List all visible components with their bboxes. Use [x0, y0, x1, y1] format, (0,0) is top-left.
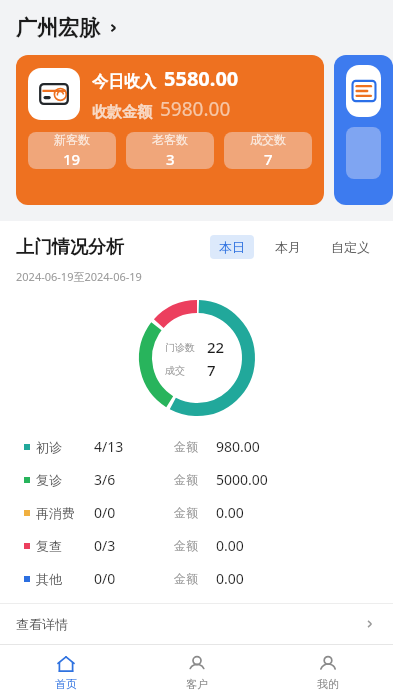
- staticText: 成交: [165, 364, 185, 377]
- button[interactable]: 其他: [0, 562, 393, 595]
- staticText: 22: [207, 337, 225, 357]
- button[interactable]: 初诊: [0, 430, 393, 463]
- button[interactable]: 再消费: [0, 496, 393, 529]
- staticText: 本月: [275, 239, 301, 255]
- button[interactable]: 客户: [131, 645, 262, 700]
- staticText: 复查: [36, 538, 62, 554]
- staticText: 7: [264, 149, 273, 169]
- staticText: 老客数: [152, 132, 188, 147]
- button[interactable]: 广州宏脉: [0, 0, 393, 55]
- button[interactable]: 本日: [210, 235, 254, 259]
- staticText: 查看详情: [16, 616, 68, 632]
- staticText: 收款金额: [92, 103, 152, 122]
- staticText: 门诊数: [165, 341, 195, 354]
- staticText: 金额: [174, 439, 198, 454]
- staticText: 初诊: [36, 439, 62, 455]
- staticText: 本日: [219, 239, 245, 255]
- staticText: 其他: [36, 571, 62, 587]
- staticText: 5000.00: [216, 470, 268, 489]
- staticText: 金额: [174, 538, 198, 553]
- staticText: 成交数: [250, 132, 286, 147]
- button[interactable]: 新客数: [28, 132, 116, 169]
- staticText: 广州宏脉: [16, 15, 100, 41]
- staticText: 金额: [174, 571, 198, 586]
- staticText: 5980.00: [160, 96, 231, 122]
- staticText: 3: [166, 149, 175, 169]
- staticText: 7: [207, 360, 216, 380]
- staticText: 0/0: [94, 503, 116, 522]
- staticText: 再消费: [36, 505, 75, 521]
- button[interactable]: 自定义: [322, 235, 379, 259]
- staticText: 4/13: [94, 437, 124, 456]
- button[interactable]: 今日收入: [16, 55, 324, 205]
- button[interactable]: 本月: [266, 235, 310, 259]
- staticText: 今日收入: [92, 72, 156, 92]
- button[interactable]: 查看详情: [0, 604, 393, 644]
- button[interactable]: [334, 55, 393, 205]
- staticText: 首页: [55, 677, 77, 691]
- staticText: 客户: [186, 677, 208, 691]
- staticText: 金额: [174, 505, 198, 520]
- staticText: 2024-06-19至2024-06-19: [16, 269, 142, 284]
- button[interactable]: 复查: [0, 529, 393, 562]
- staticText: 金额: [174, 472, 198, 487]
- staticText: 新客数: [54, 132, 90, 147]
- staticText: 我的: [317, 677, 339, 691]
- staticText: 自定义: [331, 239, 370, 255]
- button[interactable]: 我的: [262, 645, 393, 700]
- button[interactable]: 复诊: [0, 463, 393, 496]
- button[interactable]: 首页: [0, 645, 131, 700]
- staticText: 0.00: [216, 536, 244, 555]
- staticText: 上门情况分析: [16, 236, 124, 259]
- staticText: 0/0: [94, 569, 116, 588]
- staticText: 19: [63, 149, 81, 169]
- button[interactable]: 老客数: [126, 132, 214, 169]
- staticText: 复诊: [36, 472, 62, 488]
- staticText: 980.00: [216, 437, 260, 456]
- staticText: 5580.00: [164, 65, 239, 92]
- staticText: 0.00: [216, 503, 244, 522]
- button[interactable]: 成交数: [224, 132, 312, 169]
- staticText: 0/3: [94, 536, 116, 555]
- staticText: 0.00: [216, 569, 244, 588]
- staticText: 3/6: [94, 470, 116, 489]
